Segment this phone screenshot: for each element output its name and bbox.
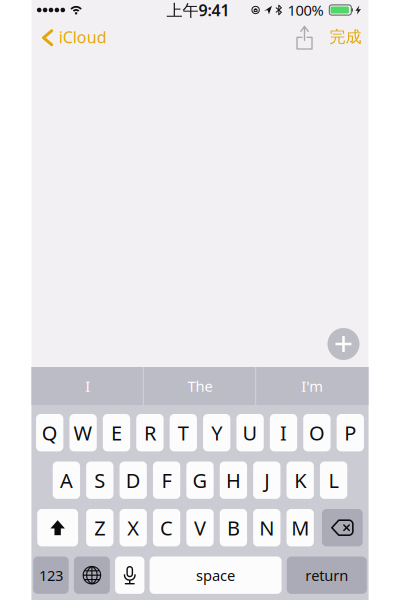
- staticText: F: [162, 467, 172, 493]
- button[interactable]: N: [253, 509, 280, 546]
- button[interactable]: V: [186, 509, 214, 546]
- button[interactable]: J: [253, 461, 280, 499]
- staticText: V: [194, 514, 206, 541]
- staticText: return: [305, 565, 348, 585]
- staticText: U: [243, 419, 258, 446]
- staticText: W: [74, 419, 93, 446]
- staticText: B: [227, 514, 240, 541]
- button[interactable]: G: [186, 461, 214, 499]
- staticText: space: [196, 565, 235, 585]
- staticText: K: [294, 467, 306, 493]
- button[interactable]: I: [31, 367, 144, 405]
- staticText: R: [144, 419, 156, 446]
- staticText: I: [280, 419, 287, 446]
- staticText: E: [111, 419, 122, 446]
- staticText: Y: [211, 419, 222, 446]
- button[interactable]: O: [303, 414, 330, 451]
- button[interactable]: 完成: [329, 20, 361, 54]
- staticText: T: [178, 419, 189, 446]
- staticText: N: [259, 514, 274, 541]
- button[interactable]: 分享: [293, 24, 315, 50]
- staticText: O: [309, 419, 325, 446]
- button[interactable]: I: [270, 414, 297, 451]
- staticText: A: [60, 467, 73, 493]
- staticText: I: [85, 376, 90, 396]
- staticText: iCloud: [59, 26, 107, 48]
- staticText: H: [226, 467, 241, 493]
- staticText: Q: [42, 419, 58, 446]
- staticText: L: [329, 467, 339, 493]
- staticText: The: [187, 376, 212, 396]
- button[interactable]: U: [236, 414, 264, 451]
- staticText: X: [127, 514, 139, 541]
- staticText: I'm: [301, 376, 323, 396]
- staticText: S: [94, 467, 105, 493]
- button[interactable]: T: [170, 414, 197, 451]
- button[interactable]: F: [153, 461, 180, 499]
- button[interactable]: 123: [33, 556, 69, 594]
- button[interactable]: space: [150, 556, 282, 594]
- staticText: D: [126, 467, 141, 493]
- button[interactable]: L: [320, 461, 347, 499]
- button[interactable]: C: [153, 509, 180, 546]
- button[interactable]: 删除: [322, 509, 363, 546]
- staticText: 100%: [288, 0, 324, 20]
- button[interactable]: P: [337, 414, 364, 451]
- button[interactable]: M: [286, 509, 314, 546]
- button[interactable]: A: [53, 461, 80, 499]
- button[interactable]: return: [287, 556, 367, 594]
- button[interactable]: W: [69, 414, 97, 451]
- button[interactable]: Z: [86, 509, 113, 546]
- staticText: 123: [39, 565, 63, 585]
- button[interactable]: X: [119, 509, 147, 546]
- button[interactable]: Y: [203, 414, 230, 451]
- button[interactable]: R: [136, 414, 163, 451]
- button[interactable]: 添加: [321, 322, 365, 366]
- button[interactable]: S: [86, 461, 113, 499]
- button[interactable]: Shift: [37, 509, 78, 546]
- button[interactable]: Q: [36, 414, 63, 451]
- staticText: P: [344, 419, 356, 446]
- staticText: Z: [94, 514, 105, 541]
- button[interactable]: K: [286, 461, 314, 499]
- button[interactable]: iCloud: [43, 19, 115, 55]
- staticText: M: [291, 514, 309, 541]
- button[interactable]: D: [119, 461, 147, 499]
- button[interactable]: H: [220, 461, 247, 499]
- button[interactable]: The: [144, 367, 256, 405]
- staticText: 完成: [329, 27, 361, 47]
- staticText: C: [160, 514, 173, 541]
- staticText: G: [192, 467, 207, 493]
- button[interactable]: I'm: [256, 367, 368, 405]
- button[interactable]: B: [220, 509, 247, 546]
- staticText: 上午9:41: [166, 0, 229, 21]
- button[interactable]: 切换键盘: [74, 556, 110, 594]
- button[interactable]: E: [103, 414, 130, 451]
- staticText: J: [264, 467, 269, 493]
- button[interactable]: 语音输入: [115, 556, 144, 594]
